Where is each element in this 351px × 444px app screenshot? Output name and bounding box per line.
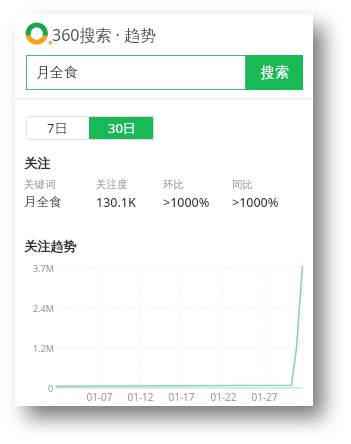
staticText: 关键词 [24,178,56,191]
staticText: 关注 [24,155,50,171]
button[interactable]: 7日 [26,116,89,140]
staticText: 月全食 [36,64,78,82]
staticText: 01-17 [168,390,195,404]
staticText: 30日 [108,119,136,137]
staticText: 环比 [163,178,184,191]
staticText: 0 [48,382,54,394]
staticText: 01-07 [86,390,113,404]
staticText: 7日 [47,119,68,137]
button[interactable]: 搜索 [246,55,303,90]
staticText: 同比 [232,178,253,191]
staticText: 01-27 [251,390,278,404]
staticText: 1.2M [33,342,54,354]
staticText: 3.7M [33,262,54,274]
staticText: 搜索 [261,64,289,82]
staticText: 月全食 [24,194,62,210]
staticText: >1000% [232,194,279,211]
staticText: 关注趋势 [24,238,76,254]
staticText: 01-12 [127,390,154,404]
staticText: 关注度 [96,178,128,191]
staticText: >1000% [163,194,210,211]
button[interactable]: 30日 [89,116,154,140]
staticText: 2.4M [33,302,54,314]
button[interactable]: 月全食 [26,55,246,90]
staticText: 360搜索 · 趋势 [52,24,157,46]
staticText: 130.1K [96,194,136,211]
staticText: 01-22 [210,390,237,404]
